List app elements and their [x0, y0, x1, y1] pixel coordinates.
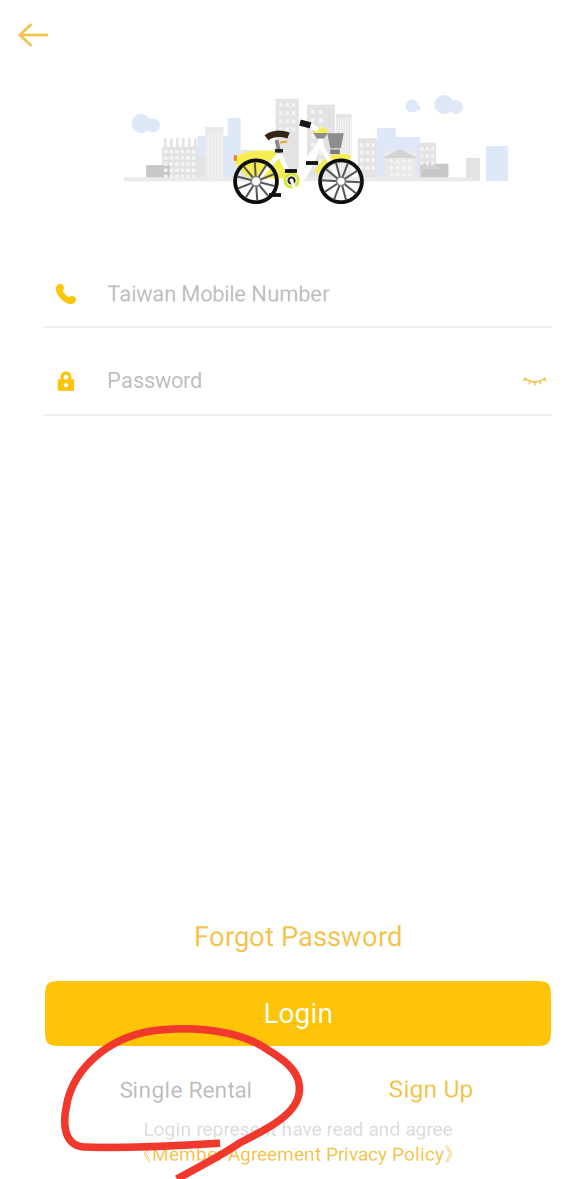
staticText: Login	[263, 997, 332, 1030]
button[interactable]: Show password	[523, 377, 546, 386]
button[interactable]: Forgot Password	[168, 917, 428, 957]
staticText: 《Member Agreement Privacy Policy》	[133, 1142, 463, 1166]
button[interactable]: Sign Up	[371, 1069, 491, 1109]
staticText: Taiwan Mobile Number	[107, 281, 329, 307]
staticText: Forgot Password	[194, 921, 402, 953]
staticText: Password	[107, 368, 202, 393]
button[interactable]: Login	[45, 981, 551, 1046]
staticText: Sign Up	[388, 1074, 473, 1103]
button[interactable]: Back	[6, 10, 62, 60]
button[interactable]: 《Member Agreement Privacy Policy》	[133, 1142, 463, 1166]
staticText: Single Rental	[119, 1077, 252, 1103]
staticText: Login represent have read and agree	[143, 1118, 452, 1140]
button[interactable]: Single Rental	[106, 1070, 266, 1110]
